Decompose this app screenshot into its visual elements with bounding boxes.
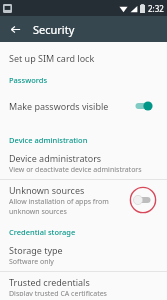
- staticText: Trusted credentials: [9, 276, 90, 288]
- staticText: Security: [33, 22, 75, 37]
- staticText: Device administrators: [9, 152, 102, 164]
- button[interactable]: Toggle off: [126, 186, 160, 214]
- button[interactable]: Toggle on: [126, 92, 160, 120]
- staticText: Display trusted CA certificates: [9, 289, 107, 296]
- button[interactable]: Storage type: [0, 240, 167, 271]
- staticText: Passwords: [9, 75, 48, 85]
- button[interactable]: Device administrators: [0, 148, 167, 179]
- button[interactable]: Make passwords visible: [0, 88, 167, 124]
- staticText: Unknown sources: [9, 184, 85, 196]
- staticText: Software only: [9, 257, 54, 267]
- staticText: Make passwords visible: [9, 100, 126, 112]
- staticText: View or deactivate device administrators: [9, 165, 142, 175]
- button[interactable]: Unknown sources: [0, 180, 167, 221]
- staticText: Credential storage: [9, 227, 76, 237]
- staticText: Allow installation of apps from unknown …: [9, 197, 122, 217]
- button[interactable]: Back: [5, 19, 25, 39]
- button[interactable]: Trusted credentials: [0, 272, 167, 300]
- staticText: Set up SIM card lock: [9, 52, 95, 64]
- button[interactable]: Set up SIM card lock: [0, 47, 167, 69]
- staticText: Device administration: [9, 135, 88, 145]
- staticText: 2:32: [148, 3, 164, 14]
- staticText: Storage type: [9, 244, 63, 256]
